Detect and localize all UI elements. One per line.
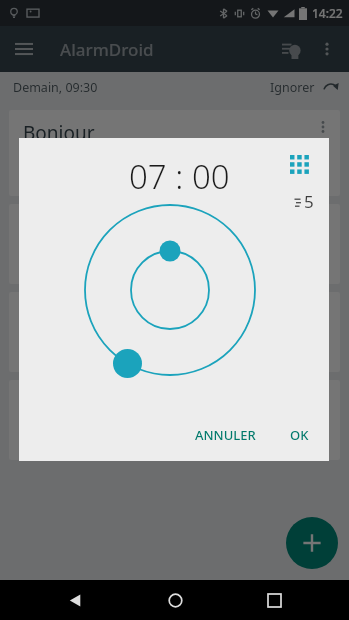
button[interactable]: Add alarm xyxy=(286,517,338,569)
staticText: Bonjour xyxy=(23,120,95,146)
staticText: ANNULER xyxy=(195,426,256,444)
button[interactable]: Select xyxy=(273,31,309,67)
button[interactable]: OK xyxy=(278,417,321,453)
button[interactable] xyxy=(9,292,340,372)
button[interactable]: Open navigation drawer xyxy=(6,31,42,67)
staticText: 07 : 00 xyxy=(129,154,230,199)
button[interactable] xyxy=(9,380,340,460)
staticText: Demain, 09:30 xyxy=(13,79,98,96)
button[interactable]: Snooze duration 5 minutes xyxy=(294,190,314,213)
button[interactable]: More options xyxy=(309,31,345,67)
button[interactable]: Recent apps xyxy=(249,580,299,620)
button[interactable]: Home xyxy=(150,580,200,620)
staticText: Ignorer xyxy=(270,79,315,96)
button[interactable]: Ignorer xyxy=(270,79,339,96)
staticText: 5 xyxy=(304,190,314,213)
button[interactable]: Switch to keypad input xyxy=(283,148,315,180)
button[interactable]: Back xyxy=(50,580,100,620)
button[interactable] xyxy=(9,204,340,284)
button[interactable]: ANNULER xyxy=(185,417,266,453)
staticText: AlarmDroid xyxy=(60,38,154,61)
button[interactable]: Bonjour xyxy=(9,110,340,196)
staticText: 14:22 xyxy=(312,5,343,21)
staticText: OK xyxy=(290,426,309,444)
